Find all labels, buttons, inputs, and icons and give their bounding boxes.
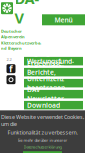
staticText: Diese Website verwendet Cookies, um die: [1, 113, 84, 127]
staticText: f: [9, 62, 13, 75]
button[interactable]: Tagungs- und Wertungsfundlinder: [24, 57, 83, 65]
button[interactable]: Ergebnisse, Berichte, Bilder: [24, 68, 83, 76]
staticText: DAV Newsletter: [27, 85, 64, 103]
staticText: Ergebnisse, Berichte, Bilder: [27, 59, 64, 85]
staticText: Tagungs- und Wertungsfundlinder: [27, 48, 74, 74]
staticText: Kletterschutzverband Bayern: [1, 40, 41, 51]
button[interactable]: DAV Newsletter: [24, 90, 83, 98]
button[interactable]: Instagram: [6, 75, 15, 84]
button[interactable]: Datenschutzerklärung: [23, 144, 61, 150]
button[interactable]: Facebook: [6, 64, 15, 73]
staticText: Datenschutzerklärung: [23, 144, 61, 150]
staticText: Menü: [54, 15, 72, 24]
staticText: DAV: [14, 0, 39, 28]
button[interactable]: Akzeptieren: [23, 151, 62, 153]
staticText: Funktionalität zu verbessern.: [7, 129, 77, 136]
staticText: 2.2: [6, 57, 11, 62]
button[interactable]: Unterlizenz beantragen: [24, 79, 83, 87]
staticText: Download: [27, 101, 60, 110]
staticText: Sie mehr darüber in unserer: [17, 138, 67, 143]
staticText: Deutscher Alpenverein: [1, 29, 25, 39]
staticText: Unterlizenz beantragen: [27, 74, 65, 92]
button[interactable]: Download: [24, 101, 83, 109]
button[interactable]: Menü: [42, 14, 85, 25]
